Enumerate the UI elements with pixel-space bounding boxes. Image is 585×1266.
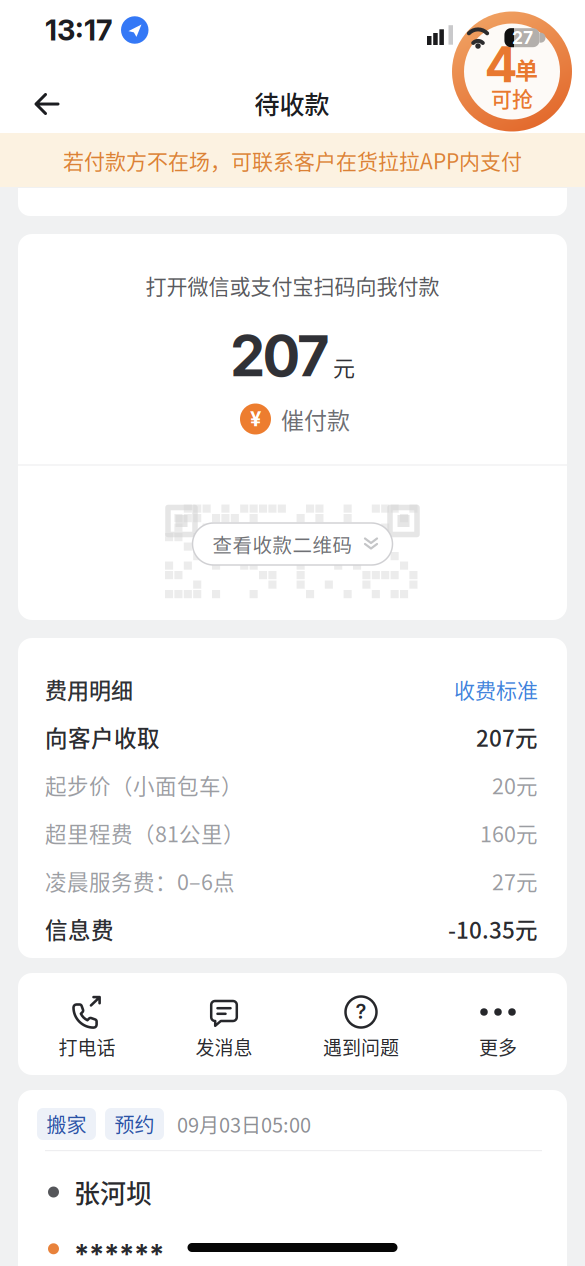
staticText: ¥ (250, 407, 261, 431)
staticText: 预约 (114, 1109, 154, 1138)
button[interactable]: 打电话 (18, 973, 155, 1075)
staticText: 13:17 (45, 12, 112, 48)
button[interactable]: ? (292, 973, 429, 1075)
button[interactable]: ¥ (240, 402, 350, 436)
staticText: 20元 (492, 769, 538, 800)
staticText: 遇到问题 (323, 1033, 399, 1060)
staticText: 4 (484, 35, 517, 94)
staticText: 费用明细 (45, 673, 133, 705)
staticText: 09月03日05:00 (177, 1109, 311, 1138)
staticText: 207 (230, 322, 330, 390)
staticText: 信息费 (45, 913, 114, 945)
staticText: 更多 (479, 1033, 517, 1060)
staticText: 打开微信或支付宝扫码向我付款 (145, 270, 439, 300)
staticText: 向客户收取 (45, 721, 160, 753)
staticText: 27元 (492, 865, 538, 896)
staticText: 可抢 (491, 82, 533, 113)
staticText: 发消息 (195, 1033, 252, 1060)
staticText: 待收款 (254, 85, 329, 121)
staticText: 27 (512, 27, 533, 48)
button[interactable]: 收费标准 (454, 674, 538, 704)
button[interactable]: 4单可抢 (452, 11, 572, 131)
staticText: 催付款 (281, 402, 350, 436)
staticText: 超里程费（81公里） (45, 817, 245, 848)
button[interactable]: 更多 (429, 973, 566, 1075)
staticText: 查看收款二维码 (212, 530, 352, 558)
staticText: 张河坝 (74, 1173, 152, 1211)
staticText: 单 (515, 52, 538, 86)
staticText: 起步价（小面包车） (45, 769, 243, 800)
button[interactable]: 发消息 (155, 973, 292, 1075)
staticText: 搬家 (46, 1109, 86, 1138)
staticText: -10.35元 (448, 913, 538, 945)
staticText: 收费标准 (454, 674, 538, 704)
staticText: 打电话 (58, 1033, 115, 1060)
button[interactable]: Back (33, 89, 61, 119)
staticText: ****** (74, 1237, 164, 1266)
staticText: 若付款方不在场，可联系客户在货拉拉APP内支付 (63, 145, 522, 175)
button[interactable]: 查看收款二维码 (192, 523, 392, 565)
staticText: 207元 (476, 721, 538, 753)
button[interactable]: 搬家 (18, 1090, 567, 1266)
staticText: 元 (333, 351, 355, 383)
staticText: 160元 (480, 817, 538, 848)
staticText: 凌晨服务费：0–6点 (45, 865, 235, 896)
staticText: ? (355, 999, 366, 1024)
